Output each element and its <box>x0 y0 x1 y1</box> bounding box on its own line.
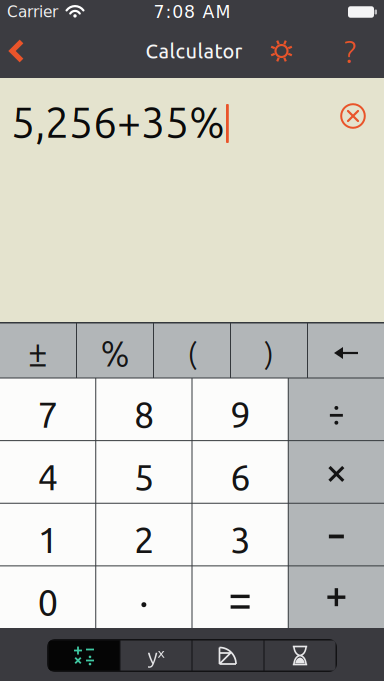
staticText: Carrier <box>7 3 58 21</box>
button[interactable]: 9 <box>192 378 288 440</box>
staticText: 6 <box>230 457 250 497</box>
staticText: 5,256+35% <box>11 98 225 146</box>
button[interactable] <box>289 566 384 628</box>
button[interactable]: 2 <box>96 504 191 565</box>
button[interactable]: ( <box>154 323 230 377</box>
staticText: ± <box>28 334 48 373</box>
button[interactable]: 0 <box>0 566 95 628</box>
button[interactable] <box>264 640 335 670</box>
staticText: 9 <box>230 394 250 434</box>
button[interactable] <box>48 640 119 670</box>
button[interactable]: % <box>77 323 153 377</box>
staticText: 2 <box>134 519 154 560</box>
staticText: 1 <box>38 519 58 560</box>
staticText: 5 <box>134 457 154 497</box>
button[interactable]: ) <box>231 323 307 377</box>
button[interactable] <box>289 441 384 503</box>
staticText: % <box>100 334 129 373</box>
staticText: yˣ <box>147 641 164 670</box>
button[interactable]: 3 <box>192 504 288 565</box>
staticText: 4 <box>38 457 58 497</box>
button[interactable]: ± <box>0 323 76 377</box>
button[interactable] <box>0 39 24 63</box>
button[interactable]: 1 <box>0 504 95 565</box>
staticText: ( <box>187 337 196 370</box>
button[interactable] <box>340 78 384 129</box>
button[interactable] <box>308 323 384 377</box>
button[interactable] <box>192 566 288 628</box>
staticText: 7 <box>38 394 58 434</box>
button[interactable] <box>289 378 384 440</box>
button[interactable]: 6 <box>192 441 288 503</box>
button[interactable]: 7 <box>0 378 95 440</box>
staticText: Calculator <box>145 40 242 62</box>
staticText: 0 <box>38 582 58 622</box>
staticText: 7:08 AM <box>154 2 230 22</box>
button[interactable] <box>289 504 384 565</box>
button[interactable] <box>96 566 191 628</box>
staticText: 8 <box>134 394 154 434</box>
button[interactable] <box>192 640 263 670</box>
button[interactable]: 4 <box>0 441 95 503</box>
button[interactable]: yˣ <box>120 640 191 670</box>
staticText: ) <box>264 337 273 370</box>
button[interactable]: 8 <box>96 378 191 440</box>
staticText: 3 <box>230 519 250 560</box>
button[interactable]: 5 <box>96 441 191 503</box>
button[interactable]: ? <box>342 33 358 69</box>
button[interactable] <box>270 39 293 62</box>
staticText: ? <box>344 33 356 69</box>
